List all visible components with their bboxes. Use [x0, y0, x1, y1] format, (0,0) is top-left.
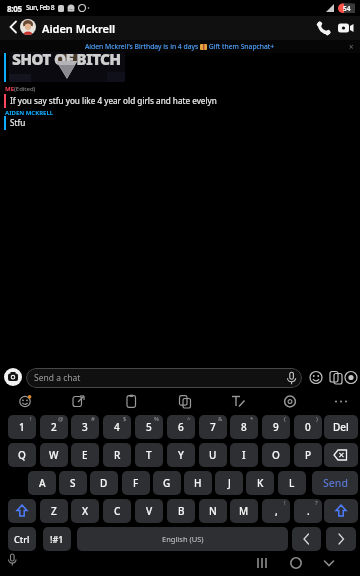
button[interactable]: Ctrl: [8, 527, 36, 551]
staticText: D: [100, 476, 108, 490]
button[interactable]: [8, 499, 36, 523]
staticText: Z: [51, 504, 57, 518]
staticText: Send a chat: [34, 372, 81, 384]
staticText: Gift them Snapchat+: [207, 42, 275, 51]
button[interactable]: K: [246, 471, 274, 495]
staticText: G: [163, 476, 171, 490]
staticText: 7: [210, 420, 216, 434]
button[interactable]: [326, 527, 356, 551]
button[interactable]: I: [230, 443, 258, 467]
staticText: AIDEN MCKRELL: [5, 109, 54, 117]
button[interactable]: [314, 548, 350, 576]
staticText: L: [289, 476, 295, 490]
button[interactable]: .: [294, 499, 322, 523]
staticText: $: [123, 415, 127, 423]
staticText: 2: [51, 420, 57, 434]
button[interactable]: S: [59, 471, 87, 495]
button[interactable]: [324, 443, 358, 467]
staticText: S: [70, 476, 76, 490]
button[interactable]: 1: [8, 415, 36, 439]
button[interactable]: 5: [135, 415, 163, 439]
button[interactable]: !#1: [43, 527, 71, 551]
button[interactable]: SHOT OF BITCH: [9, 52, 125, 82]
button[interactable]: D: [90, 471, 118, 495]
button[interactable]: X: [71, 499, 99, 523]
staticText: P: [305, 448, 312, 462]
staticText: R: [114, 448, 121, 462]
staticText: English (US): [162, 534, 204, 544]
staticText: 8:05: [7, 3, 22, 14]
button[interactable]: Send: [312, 471, 358, 495]
staticText: N: [209, 504, 217, 518]
staticText: M: [239, 504, 249, 518]
staticText: Sun, Feb 8: [26, 3, 55, 12]
button[interactable]: English (US): [77, 527, 288, 551]
button[interactable]: [292, 527, 321, 551]
button[interactable]: O: [262, 443, 290, 467]
staticText: Aiden Mckrell's Birthday is in 4 days: [85, 42, 200, 51]
button[interactable]: H: [184, 471, 212, 495]
button[interactable]: W: [40, 443, 68, 467]
button[interactable]: 9: [262, 415, 290, 439]
staticText: 8: [241, 420, 247, 434]
staticText: K: [257, 476, 264, 490]
button[interactable]: J: [215, 471, 243, 495]
button[interactable]: [20, 19, 36, 35]
button[interactable]: C: [103, 499, 131, 523]
staticText: 5: [146, 420, 152, 434]
staticText: U: [209, 448, 217, 462]
button[interactable]: T: [135, 443, 163, 467]
button[interactable]: 8: [230, 415, 258, 439]
button[interactable]: Q: [8, 443, 36, 467]
staticText: @: [58, 415, 64, 423]
button[interactable]: Send a chat: [26, 368, 302, 388]
button[interactable]: B: [167, 499, 195, 523]
button[interactable]: U: [199, 443, 227, 467]
button[interactable]: 3: [71, 415, 99, 439]
staticText: J: [228, 476, 231, 490]
button[interactable]: R: [103, 443, 131, 467]
button[interactable]: 7: [199, 415, 227, 439]
staticText: ×: [349, 41, 354, 52]
staticText: SHOT OF BITCH: [12, 52, 121, 69]
button[interactable]: [324, 499, 358, 523]
staticText: O: [272, 448, 280, 462]
staticText: %: [154, 415, 159, 423]
button[interactable]: [0, 391, 360, 412]
button[interactable]: Del: [324, 415, 358, 439]
staticText: &: [218, 415, 223, 423]
staticText: ,: [275, 504, 278, 518]
button[interactable]: [280, 548, 316, 576]
button[interactable]: [4, 368, 22, 386]
button[interactable]: [240, 548, 280, 576]
staticText: *: [250, 415, 254, 423]
staticText: Aiden Mckrell: [42, 21, 116, 36]
button[interactable]: Y: [167, 443, 195, 467]
staticText: !: [30, 415, 32, 423]
button[interactable]: Aiden Mckrell's Birthday is in 4 days: [0, 40, 360, 53]
button[interactable]: N: [199, 499, 227, 523]
button[interactable]: P: [294, 443, 322, 467]
button[interactable]: ,: [262, 499, 290, 523]
button[interactable]: E: [71, 443, 99, 467]
staticText: B: [178, 504, 185, 518]
button[interactable]: 4: [103, 415, 131, 439]
staticText: ): [316, 415, 318, 423]
button[interactable]: F: [122, 471, 150, 495]
staticText: #: [91, 415, 95, 423]
button[interactable]: Z: [40, 499, 68, 523]
staticText: Y: [178, 448, 184, 462]
staticText: Ctrl: [14, 533, 30, 545]
button[interactable]: 6: [167, 415, 195, 439]
staticText: W: [49, 448, 59, 462]
button[interactable]: 0: [294, 415, 322, 439]
staticText: .: [307, 504, 310, 518]
button[interactable]: L: [278, 471, 306, 495]
staticText: Del: [333, 420, 349, 434]
button[interactable]: V: [135, 499, 163, 523]
button[interactable]: G: [153, 471, 181, 495]
button[interactable]: A: [28, 471, 56, 495]
button[interactable]: 2: [40, 415, 68, 439]
button[interactable]: M: [230, 499, 258, 523]
staticText: X: [82, 504, 89, 518]
